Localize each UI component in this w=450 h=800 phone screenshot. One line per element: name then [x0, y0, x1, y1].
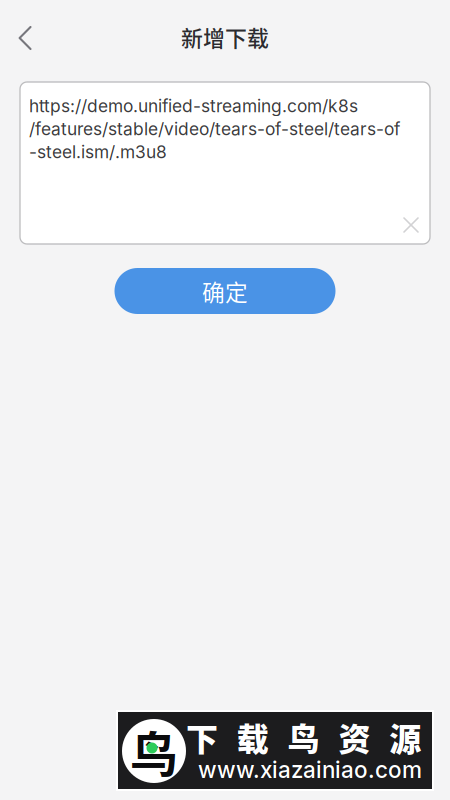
staticText: 确定: [202, 275, 248, 307]
button[interactable]: 确定: [114, 268, 335, 314]
staticText: 新增下载: [181, 21, 269, 53]
staticText: www.xiazainiao.com: [198, 756, 422, 783]
button[interactable]: Back: [3, 16, 47, 60]
staticText: 下载鸟资源: [186, 714, 421, 760]
button[interactable]: Clear: [398, 212, 424, 238]
staticText: https://demo.unified-streaming.com/k8s /…: [29, 95, 400, 162]
staticText: 鸟: [130, 716, 178, 786]
